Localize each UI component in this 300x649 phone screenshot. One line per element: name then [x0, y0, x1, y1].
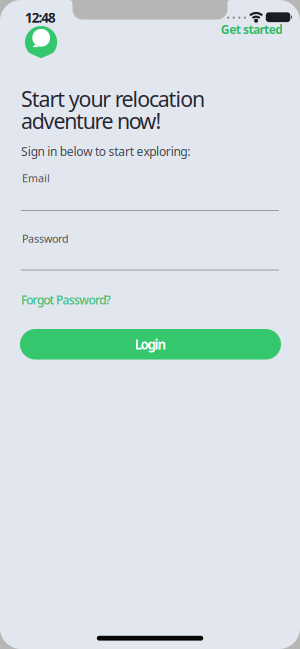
staticText: Forgot Password? — [21, 292, 110, 308]
staticText: Email — [22, 171, 50, 185]
staticText: Sign in below to start exploring: — [21, 143, 190, 159]
staticText: Login — [134, 335, 166, 353]
staticText: Start your relocation — [21, 84, 205, 113]
button[interactable]: Forgot Password? — [21, 292, 110, 308]
staticText: Get started — [221, 21, 283, 37]
button[interactable]: Login — [20, 329, 281, 359]
staticText: Password — [22, 231, 69, 246]
button[interactable]: Email — [21, 171, 279, 211]
button[interactable]: Password — [21, 231, 279, 270]
staticText: 12:48 — [25, 9, 56, 26]
button[interactable]: Get started — [221, 21, 283, 37]
staticText: adventure now! — [21, 106, 161, 135]
